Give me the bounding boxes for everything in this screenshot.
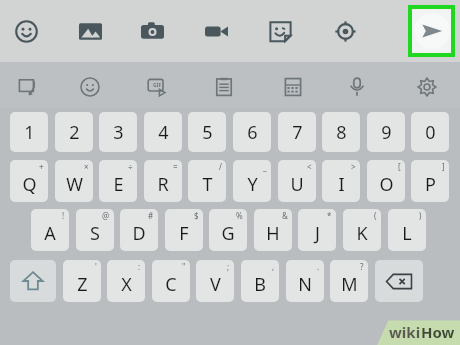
button[interactable]: ( [343,209,381,251]
button[interactable]: ] [411,160,449,202]
staticText: M [341,272,358,297]
staticText: G [221,221,235,246]
button[interactable]: Voice input [342,72,372,102]
staticText: [ [398,161,401,172]
button[interactable]: < [278,160,316,202]
button[interactable]: _ [233,160,271,202]
button[interactable]: Send [408,5,455,57]
button[interactable]: ? [330,260,368,302]
button[interactable]: 9 [367,112,405,152]
button[interactable]: 5 [188,112,226,152]
staticText: # [148,210,154,221]
staticText: + [39,161,44,172]
staticText: : [138,261,141,272]
staticText: D [132,221,146,246]
button[interactable]: 7 [278,112,316,152]
staticText: ( [374,210,377,221]
staticText: L [402,221,412,246]
staticText: T [202,172,213,197]
staticText: ? [360,261,364,272]
staticText: P [425,172,436,197]
staticText: Y [247,172,258,197]
staticText: . [317,261,320,272]
button[interactable]: 6 [233,112,271,152]
staticText: H [266,221,280,246]
staticText: ] [442,161,445,172]
button[interactable]: Sticker [263,14,297,48]
staticText: X [121,272,132,297]
staticText: & [282,210,288,221]
staticText: K [356,221,368,246]
button[interactable]: ; [196,260,234,302]
button[interactable]: Clipboard [209,72,239,102]
staticText: 2 [69,120,80,145]
staticText: 6 [247,120,258,145]
staticText: ÷ [128,161,133,172]
button[interactable]: Number pad [278,72,308,102]
staticText: * [327,210,332,221]
button[interactable]: " [152,260,190,302]
staticText: J [315,221,320,246]
button[interactable]: * [298,209,336,251]
staticText: Z [77,272,88,297]
button[interactable]: [ [367,160,405,202]
button[interactable]: ) [388,209,426,251]
staticText: R [157,172,169,197]
button[interactable]: & [254,209,292,251]
button[interactable]: / [188,160,226,202]
staticText: U [290,172,304,197]
button[interactable]: # [120,209,158,251]
button[interactable]: : [107,260,145,302]
button[interactable]: Video [199,14,233,48]
button[interactable]: GIF [142,72,172,102]
button[interactable]: 3 [99,112,137,152]
button[interactable]: Shift [10,260,56,302]
staticText: O [379,172,394,197]
staticText: $ [194,210,199,221]
button[interactable]: 0 [411,112,449,152]
button[interactable]: 8 [322,112,360,152]
button[interactable]: Emoji [9,14,43,48]
staticText: 4 [158,120,169,145]
staticText: , [272,261,275,272]
button[interactable]: Gallery [73,14,107,48]
staticText: @ [102,210,110,221]
staticText: wiki [389,322,421,342]
button[interactable]: ! [31,209,69,251]
staticText: I [338,172,345,197]
staticText: ) [419,210,422,221]
staticText: 3 [113,120,124,145]
button[interactable]: ÷ [99,160,137,202]
staticText: 1 [24,120,35,145]
staticText: ; [227,261,230,272]
staticText: ' [95,261,97,272]
staticText: % [236,210,243,221]
button[interactable]: @ [76,209,114,251]
button[interactable]: 2 [55,112,93,152]
button[interactable]: 4 [144,112,182,152]
button[interactable]: + [10,160,48,202]
button[interactable]: Translate [12,72,42,102]
button[interactable]: Settings [412,72,442,102]
staticText: F [179,221,189,246]
button[interactable]: Backspace [375,260,423,302]
staticText: N [298,272,312,297]
staticText: 8 [336,120,347,145]
button[interactable]: × [55,160,93,202]
button[interactable]: ' [63,260,101,302]
staticText: S [90,221,100,246]
button[interactable]: > [322,160,360,202]
button[interactable]: % [209,209,247,251]
button[interactable]: = [144,160,182,202]
button[interactable]: . [286,260,324,302]
staticText: 9 [381,120,392,145]
button[interactable]: Location [328,14,362,48]
staticText: / [219,161,222,172]
staticText: = [173,161,178,172]
button[interactable]: Emoji keyboard [75,72,105,102]
button[interactable]: Camera [135,14,169,48]
staticText: C [165,272,177,297]
button[interactable]: 1 [10,112,48,152]
button[interactable]: , [241,260,279,302]
button[interactable]: $ [165,209,203,251]
